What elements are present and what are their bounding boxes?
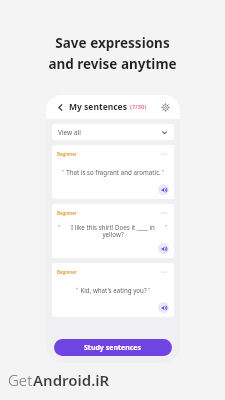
button[interactable]: Play audio bbox=[158, 302, 169, 313]
staticText: and revise anytime bbox=[48, 55, 177, 73]
staticText: View all bbox=[58, 128, 81, 137]
button[interactable]: Play audio bbox=[158, 243, 169, 254]
button[interactable]: More options bbox=[159, 149, 169, 159]
staticText: Beginner bbox=[57, 151, 77, 157]
button[interactable]: Beginner bbox=[52, 204, 174, 258]
button[interactable]: More options bbox=[159, 208, 169, 218]
button[interactable]: Play audio bbox=[158, 184, 169, 195]
button[interactable]: Settings bbox=[159, 101, 171, 113]
button[interactable]: Study sentences bbox=[54, 339, 172, 356]
staticText: Android.iR bbox=[33, 370, 110, 390]
staticText: Beginner bbox=[57, 269, 77, 275]
staticText: Beginner bbox=[57, 210, 77, 216]
staticText: That is so fragrant and aromatic. bbox=[66, 168, 161, 176]
staticText: “ bbox=[62, 168, 65, 176]
staticText: Kid, what's eating you? bbox=[80, 286, 147, 294]
staticText: Get bbox=[8, 370, 33, 390]
staticText: I like this shirt! Does it ____ in yello… bbox=[62, 223, 164, 239]
button[interactable]: Beginner bbox=[52, 145, 174, 199]
button[interactable]: Beginner bbox=[52, 263, 174, 317]
button[interactable]: More options bbox=[159, 267, 169, 277]
staticText: ” bbox=[148, 286, 151, 294]
staticText: (7/30) bbox=[130, 103, 147, 111]
staticText: ” bbox=[165, 223, 168, 231]
staticText: ” bbox=[162, 168, 165, 176]
staticText: My sentences bbox=[69, 101, 127, 113]
staticText: “ bbox=[58, 223, 61, 231]
staticText: “ bbox=[76, 286, 79, 294]
staticText: Study sentences bbox=[84, 343, 142, 353]
button[interactable]: View all bbox=[52, 124, 174, 140]
button[interactable]: Back bbox=[55, 102, 66, 113]
staticText: Save expressions bbox=[55, 34, 170, 52]
